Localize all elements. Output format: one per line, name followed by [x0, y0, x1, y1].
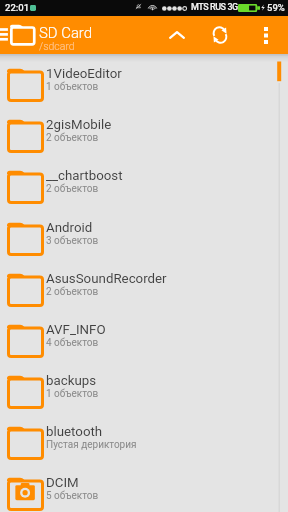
staticText: 22:01	[5, 2, 30, 13]
button[interactable]: __chartboost	[0, 155, 288, 206]
staticText: DCIM	[46, 475, 79, 491]
staticText: 1VideoEditor	[46, 66, 122, 82]
button[interactable]: AVF_INFO	[0, 309, 288, 360]
button[interactable]: More options	[250, 19, 282, 51]
staticText: 2 объектов	[46, 286, 99, 298]
button[interactable]: 2gisMobile	[0, 104, 288, 155]
staticText: 4 объектов	[46, 337, 99, 349]
button[interactable]: Refresh	[204, 19, 236, 51]
button[interactable]: DCIM	[0, 462, 288, 512]
staticText: 2 объектов	[46, 132, 99, 144]
staticText: 59%	[267, 2, 285, 13]
staticText: Android	[46, 220, 93, 236]
staticText: 5 объектов	[46, 490, 99, 502]
button[interactable]: 1VideoEditor	[0, 53, 288, 104]
staticText: bluetooth	[46, 424, 103, 440]
staticText: 3 объектов	[46, 235, 99, 247]
staticText: AVF_INFO	[46, 322, 106, 338]
button[interactable]: AsusSoundRecorder	[0, 258, 288, 309]
staticText: backups	[46, 373, 97, 389]
button[interactable]: Open navigation drawer	[0, 16, 37, 54]
button[interactable]: backups	[0, 360, 288, 411]
button[interactable]: bluetooth	[0, 411, 288, 462]
staticText: __chartboost	[46, 168, 123, 184]
staticText: /sdcard	[39, 40, 75, 52]
staticText: MTS RUS 3G	[191, 2, 238, 13]
staticText: Пустая дериктория	[46, 439, 137, 451]
button[interactable]: Go up	[161, 19, 193, 51]
button[interactable]: Android	[0, 207, 288, 258]
staticText: 1 объектов	[46, 81, 99, 93]
staticText: 1 объектов	[46, 388, 99, 400]
staticText: 2 объектов	[46, 183, 99, 195]
staticText: SD Card	[39, 24, 93, 41]
staticText: AsusSoundRecorder	[46, 271, 167, 287]
staticText: 2gisMobile	[46, 117, 112, 133]
